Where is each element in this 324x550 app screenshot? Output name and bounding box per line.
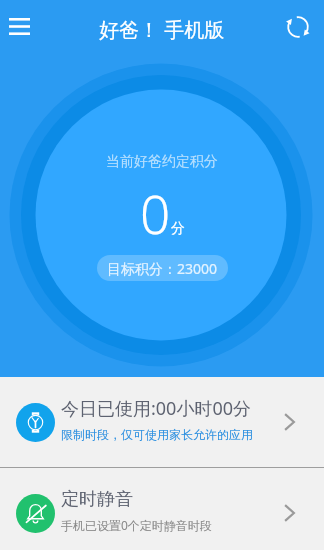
staticText: 好爸！ 手机版	[99, 16, 225, 43]
staticText: 限制时段，仅可使用家长允许的应用	[61, 427, 253, 442]
button[interactable]: Refresh	[271, 0, 324, 53]
staticText: 手机已设置0个定时静音时段	[61, 517, 212, 533]
staticText: 今日已使用:00小时00分	[61, 396, 252, 421]
staticText: 目标积分：23000	[107, 259, 218, 278]
staticText: 当前好爸约定积分	[106, 153, 218, 171]
button[interactable]: 今日已使用:00小时00分	[0, 377, 324, 467]
staticText: 0	[140, 177, 171, 249]
button[interactable]: Menu	[0, 0, 38, 53]
staticText: 分	[171, 220, 185, 238]
staticText: 定时静音	[61, 488, 133, 511]
button[interactable]: 定时静音	[0, 468, 324, 550]
